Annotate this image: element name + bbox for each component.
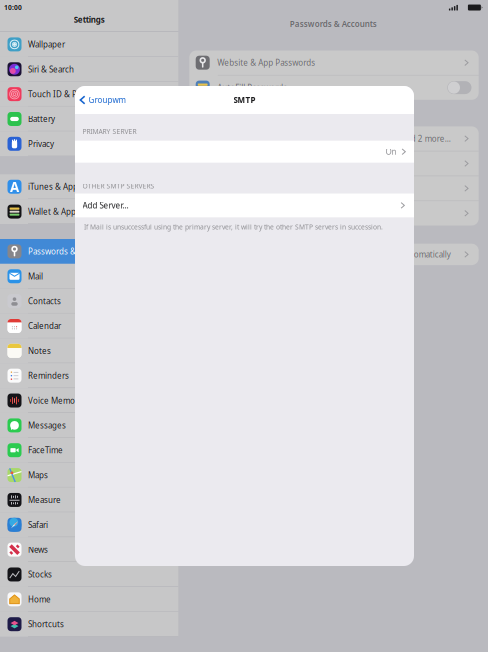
button[interactable]: Battery [0,107,178,131]
staticText: Stocks [28,569,52,580]
button[interactable]: On [75,141,414,163]
staticText: Wallet & App [28,206,76,217]
staticText: Passwords & [28,246,76,257]
button[interactable]: Calendar [0,314,178,338]
staticText: Groupwm [88,95,125,105]
button[interactable]: A [0,174,178,199]
staticText: Touch ID & P [28,89,77,99]
staticText: Reminders [28,370,69,381]
staticText: Mail [28,271,43,282]
staticText: and 2 more... [402,133,451,144]
staticText: SMTP [233,95,255,105]
button[interactable]: Notes [0,338,178,363]
button[interactable]: Privacy [0,131,178,156]
button[interactable]: Measure [0,487,178,512]
staticText: Privacy [28,138,54,149]
staticText: Voice Memos [28,395,79,406]
staticText: Contacts [28,296,61,306]
staticText: A [10,178,19,196]
button[interactable]: Reminders [0,363,178,388]
staticText: Gmail [199,158,220,169]
staticText: Siri & Search [28,64,74,75]
button[interactable]: Home [0,587,178,612]
button[interactable]: Messages [0,413,178,438]
button[interactable]: Contacts [0,289,178,314]
button[interactable]: Safari [0,512,178,537]
staticText: Add Server... [82,200,128,211]
staticText: Safari [28,519,48,530]
staticText: Add Account [199,208,247,219]
staticText: On [386,146,397,157]
button[interactable]: Add Server... [75,193,414,217]
staticText: iTunes & App [28,181,78,192]
staticText: Measure [28,495,61,505]
staticText: News [28,544,48,555]
button[interactable]: Siri & Search [0,57,178,82]
staticText: 10:00 [4,3,22,12]
button[interactable]: Voice Memos [0,388,178,413]
button[interactable]: Stocks [0,562,178,587]
staticText: Battery [28,114,55,124]
button[interactable]: Touch ID & P [0,82,178,107]
staticText: If Mail is unsuccessful using the primar… [84,222,383,231]
staticText: Home [28,594,51,605]
button[interactable]: Maps [0,463,178,488]
staticText: Calendar [28,321,61,331]
button[interactable]: News [0,537,178,562]
staticText: Messages [28,420,66,431]
button[interactable]: Shortcuts [0,612,178,637]
staticText: Website & App Passwords [217,57,315,68]
button[interactable]: Groupwm [75,90,125,110]
staticText: FaceTime [28,445,63,455]
button[interactable]: Passwords & [0,239,178,264]
staticText: PRIMARY SERVER [82,127,136,136]
button[interactable]: Mail [0,264,178,289]
staticText: Settings [74,14,105,25]
staticText: Automatically [401,249,451,260]
staticText: OTHER SMTP SERVERS [82,181,154,190]
staticText: Wallpaper [28,39,65,50]
button[interactable]: FaceTime [0,438,178,463]
staticText: Shortcuts [28,619,64,629]
button[interactable]: Wallet & App [0,199,178,224]
staticText: iCloud [199,133,223,144]
staticText: Notes [28,345,51,356]
staticText: Passwords & Accounts [290,18,377,29]
staticText: AutoFill Passwords [217,82,287,93]
staticText: Maps [28,470,48,480]
button[interactable]: Wallpaper [0,32,178,57]
